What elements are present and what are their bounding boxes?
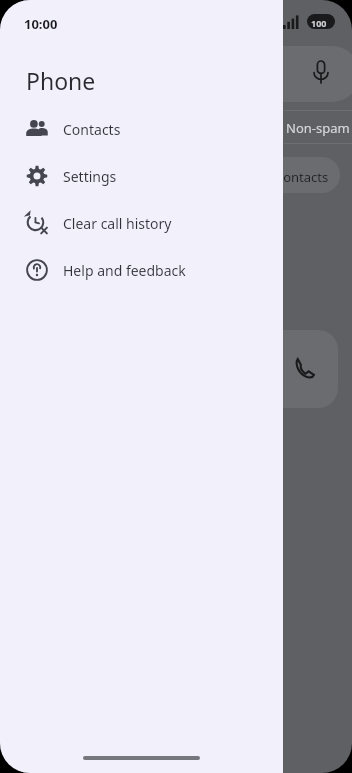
- staticText: 10:00: [24, 15, 58, 33]
- button[interactable]: Settings: [0, 158, 283, 194]
- staticText: Settings: [63, 167, 117, 186]
- staticText: Phone: [26, 65, 96, 96]
- button[interactable]: Help and feedback: [0, 252, 283, 288]
- staticText: Contacts: [63, 120, 121, 139]
- staticText: 100: [311, 17, 327, 29]
- staticText: Non-spam: [286, 119, 350, 137]
- button[interactable]: Clear call history: [0, 205, 283, 241]
- staticText: Clear call history: [63, 214, 172, 233]
- staticText: Contacts: [275, 168, 329, 186]
- button[interactable]: Contacts: [0, 111, 283, 147]
- staticText: Help and feedback: [63, 261, 186, 280]
